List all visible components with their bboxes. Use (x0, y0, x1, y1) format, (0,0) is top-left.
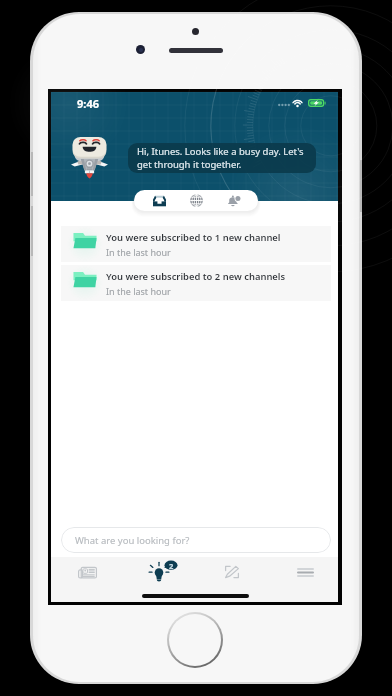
button[interactable]: Discover (183, 190, 210, 211)
button[interactable]: You were subscribed to 1 new channel (61, 226, 331, 262)
staticText: In the last hour (106, 285, 171, 297)
staticText: You were subscribed to 1 new channel (106, 231, 281, 244)
button[interactable]: Inbox (146, 190, 173, 211)
button[interactable]: News (72, 557, 102, 587)
button[interactable]: Menu (290, 557, 320, 587)
button[interactable]: What are you looking for? (61, 527, 331, 553)
staticText: What are you looking for? (75, 534, 190, 547)
button[interactable]: Ideas, 2 new (144, 557, 174, 587)
staticText: In the last hour (106, 246, 171, 258)
button[interactable]: You were subscribed to 2 new channels (61, 265, 331, 301)
button[interactable]: Notifications (220, 190, 247, 211)
button[interactable]: Hi, Itunes. Looks like a busy day. Let's… (128, 143, 316, 173)
button[interactable]: Compose (217, 557, 247, 587)
staticText: Hi, Itunes. Looks like a busy day. Let's… (137, 145, 304, 171)
staticText: 9:46 (77, 96, 99, 111)
button[interactable]: Home (166, 611, 224, 669)
staticText: 2 (169, 561, 174, 570)
staticText: You were subscribed to 2 new channels (106, 270, 286, 283)
